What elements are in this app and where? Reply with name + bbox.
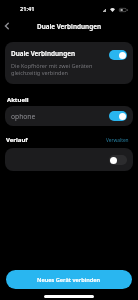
staticText: Die Kopfhörer mit zwei Geräten gleichzei… bbox=[11, 62, 93, 76]
button[interactable]: Back bbox=[0, 19, 14, 33]
staticText: Verlauf bbox=[6, 136, 28, 144]
button[interactable]: Verwalten bbox=[106, 137, 129, 144]
button[interactable]: Neues Gerät verbinden bbox=[6, 270, 132, 289]
staticText: Duale Verbindungen bbox=[11, 49, 109, 58]
button[interactable]: Duale Verbindungen bbox=[5, 42, 133, 84]
staticText: Duale Verbindungen bbox=[37, 22, 101, 31]
button[interactable]: ophone bbox=[5, 106, 133, 126]
button[interactable]: Switch off bbox=[109, 155, 127, 165]
button[interactable]: Switch on bbox=[109, 111, 127, 121]
staticText: Neues Gerät verbinden bbox=[37, 276, 101, 284]
button[interactable]: Switch off bbox=[5, 148, 133, 171]
staticText: ophone bbox=[11, 112, 109, 121]
staticText: 21:41 bbox=[20, 5, 35, 13]
button[interactable]: Switch on bbox=[109, 50, 127, 60]
staticText: Aktuell bbox=[7, 96, 29, 104]
